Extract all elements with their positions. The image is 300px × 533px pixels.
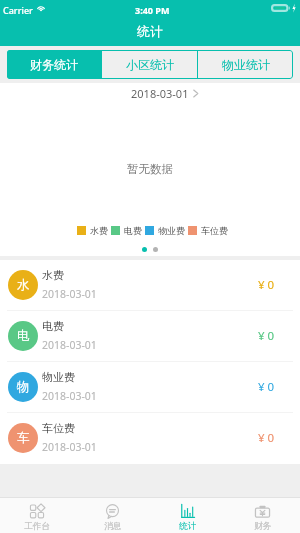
staticText: 电费 [124, 225, 142, 236]
staticText: 水费 [42, 268, 64, 282]
staticText: 3:40 PM [135, 4, 170, 16]
staticText: 物业费 [42, 370, 75, 384]
staticText: 统计 [137, 23, 163, 39]
staticText: 2018-03-01 [42, 389, 97, 403]
staticText: ¥ 0 [258, 328, 275, 344]
staticText: 财务统计 [30, 57, 78, 72]
staticText: 2018-03-01 [42, 338, 97, 352]
button[interactable]: 统计 [150, 498, 225, 533]
staticText: 水 [17, 277, 30, 293]
staticText: ¥ 0 [258, 379, 275, 395]
button[interactable]: 工作台 [0, 498, 75, 533]
staticText: ¥ 0 [258, 277, 275, 293]
staticText: 小区统计 [126, 57, 174, 72]
staticText: 车位费 [201, 225, 228, 236]
button[interactable]: 物 [0, 362, 300, 412]
staticText: 财务 [254, 521, 272, 532]
button[interactable]: 2018-03-01 [131, 86, 199, 101]
staticText: 车位费 [42, 421, 75, 435]
staticText: 消息 [104, 521, 122, 532]
staticText: ¥ 0 [258, 430, 275, 446]
staticText: 水费 [90, 225, 108, 236]
button[interactable]: 财务统计 [7, 50, 101, 79]
staticText: 电 [17, 328, 30, 344]
button[interactable]: 电 [0, 311, 300, 361]
staticText: 物业费 [158, 225, 185, 236]
staticText: 电费 [42, 319, 64, 333]
staticText: 2018-03-01 [42, 440, 97, 454]
staticText: 物 [17, 379, 30, 395]
button[interactable]: 物业统计 [198, 50, 293, 79]
staticText: 暂无数据 [127, 162, 173, 176]
staticText: 车 [17, 430, 30, 446]
button[interactable]: 小区统计 [102, 50, 197, 79]
staticText: 统计 [179, 521, 197, 532]
button[interactable]: 财务 [225, 498, 300, 533]
button[interactable]: 水 [0, 260, 300, 310]
button[interactable]: 消息 [75, 498, 150, 533]
staticText: 2018-03-01 [42, 287, 97, 301]
button[interactable]: 车 [0, 413, 300, 463]
staticText: 物业统计 [222, 57, 270, 72]
staticText: 2018-03-01 [131, 86, 189, 101]
staticText: 工作台 [24, 521, 51, 532]
staticText: Carrier [3, 4, 33, 16]
